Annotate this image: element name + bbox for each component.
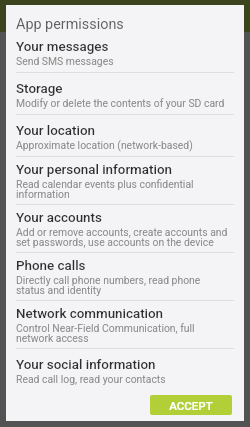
staticText: Control Near-Field Communication, full n… [16, 322, 229, 345]
staticText: Add or remove accounts, create accounts … [16, 226, 229, 249]
staticText: Network communication [16, 306, 164, 322]
staticText: Modify or delete the contents of your SD… [16, 97, 225, 109]
staticText: Your messages [16, 39, 109, 55]
staticText: Storage [16, 81, 63, 97]
button[interactable]: Your personal information [6, 157, 244, 204]
staticText: Your location [16, 123, 96, 139]
button[interactable]: Phone calls [6, 253, 244, 300]
button[interactable]: Storage [6, 73, 244, 114]
button[interactable]: ACCEPT [150, 395, 232, 415]
staticText: Your accounts [16, 210, 102, 226]
button[interactable]: Your accounts [6, 205, 244, 252]
staticText: Your social information [16, 357, 156, 373]
button[interactable]: Your location [6, 115, 244, 156]
staticText: Directly call phone numbers, read phone … [16, 274, 229, 297]
staticText: Your personal information [16, 162, 172, 178]
staticText: Send SMS messages [16, 55, 114, 67]
staticText: ACCEPT [169, 399, 213, 412]
button[interactable]: Your social information [6, 349, 244, 390]
button[interactable]: Your messages [6, 31, 244, 72]
staticText: Approximate location (network-based) [16, 139, 193, 151]
button[interactable]: Network communication [6, 301, 244, 348]
staticText: Read calendar events plus confidential i… [16, 178, 229, 201]
staticText: Phone calls [16, 258, 86, 274]
staticText: App permissions [16, 16, 124, 33]
staticText: Read call log, read your contacts [16, 373, 166, 385]
